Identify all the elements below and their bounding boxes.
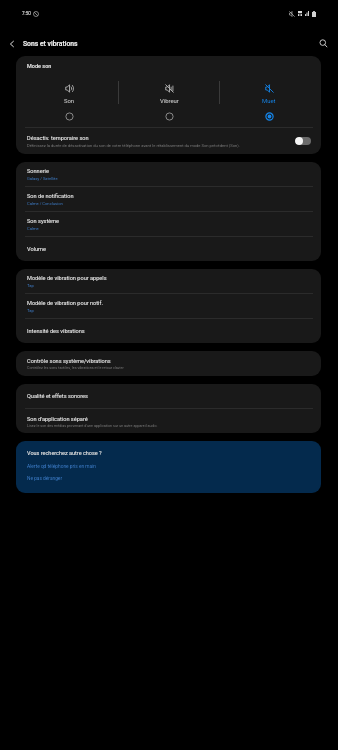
staticText: Sonnerie — [27, 168, 49, 175]
button[interactable]: Alerte qd téléphone pris en main — [27, 464, 96, 470]
button[interactable]: Désactiv. temporaire son — [16, 128, 321, 154]
button[interactable]: Désactivation temporaire du son — [295, 137, 311, 145]
button[interactable]: Ne pas déranger — [27, 476, 63, 482]
staticText: Vous recherchez autre chose ? — [27, 450, 102, 456]
staticText: Modèle de vibration pour appels — [27, 275, 107, 282]
button[interactable]: Son de notification — [16, 187, 321, 211]
staticText: Qualité et effets sonores — [27, 393, 88, 400]
staticText: Sons et vibrations — [23, 40, 78, 48]
button[interactable]: Rechercher — [313, 28, 334, 59]
staticText: Galaxy / Satellite — [27, 176, 58, 181]
staticText: Mode son — [27, 63, 52, 69]
staticText: Définissez la durée de désactivation du … — [27, 143, 240, 148]
button[interactable]: Qualité et effets sonores — [16, 384, 321, 408]
button[interactable]: Son système — [16, 212, 321, 236]
button[interactable]: Retour — [0, 28, 23, 59]
button[interactable]: Sonnerie — [16, 162, 321, 186]
staticText: Désactiv. temporaire son — [27, 135, 89, 142]
staticText: Contrôle sons système/vibrations — [27, 358, 111, 365]
button[interactable]: Son — [39, 69, 99, 121]
staticText: Son d'application séparé — [27, 416, 88, 423]
button[interactable]: Intensité des vibrations — [16, 319, 321, 343]
staticText: 7:50 — [22, 11, 31, 16]
staticText: Son de notification — [27, 193, 74, 200]
staticText: Tap — [27, 283, 34, 288]
staticText: Son système — [27, 218, 60, 225]
staticText: Son — [64, 98, 75, 105]
button[interactable]: Modèle de vibration pour notif. — [16, 294, 321, 318]
staticText: Tap — [27, 308, 34, 313]
staticText: Lisez le son des médias provenant d'une … — [27, 424, 158, 428]
staticText: Calme / Conclusion — [27, 201, 63, 206]
staticText: Muet — [262, 98, 276, 105]
staticText: Intensité des vibrations — [27, 328, 85, 335]
button[interactable]: Son d'application séparé — [16, 409, 321, 433]
button[interactable]: Modèle de vibration pour appels — [16, 269, 321, 293]
staticText: Modèle de vibration pour notif. — [27, 300, 103, 307]
button[interactable]: Volume — [16, 237, 321, 261]
button[interactable]: Vibreur — [139, 69, 199, 121]
staticText: Calme — [27, 226, 39, 231]
staticText: Vibreur — [160, 98, 179, 105]
staticText: Contrôlez les sons tactiles, les vibrati… — [27, 366, 124, 370]
staticText: Volume — [27, 246, 46, 253]
button[interactable]: Contrôle sons système/vibrations — [16, 351, 321, 376]
button[interactable]: Muet — [239, 69, 299, 121]
